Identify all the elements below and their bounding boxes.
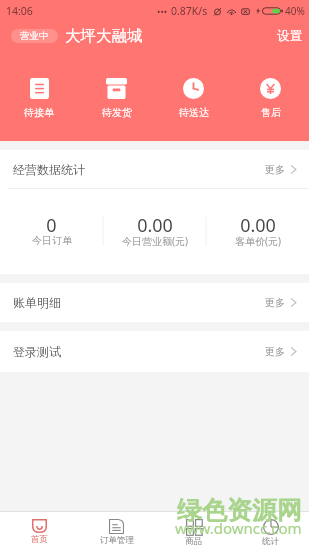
staticText: 更多: [265, 345, 285, 358]
button[interactable]: 统计: [232, 512, 309, 547]
staticText: 订单管理: [100, 535, 134, 546]
staticText: 售后: [261, 106, 281, 119]
staticText: 经营数据统计: [13, 162, 85, 177]
staticText: 统计: [262, 536, 279, 547]
staticText: 待送达: [179, 106, 209, 119]
staticText: 14:06: [6, 4, 33, 18]
button[interactable]: 售后: [232, 49, 309, 119]
staticText: •••: [157, 5, 168, 17]
staticText: 设置: [277, 28, 302, 44]
button[interactable]: 经营数据统计: [0, 150, 309, 188]
staticText: 今日营业额(元): [122, 234, 188, 248]
staticText: 账单明细: [13, 295, 61, 310]
staticText: 0.87K/s: [171, 4, 208, 18]
staticText: 待接单: [24, 106, 54, 119]
staticText: 营业中: [20, 30, 49, 42]
staticText: 0.00: [240, 213, 276, 238]
staticText: 客单价(元): [235, 234, 281, 248]
staticText: 绿色资源网: [177, 495, 302, 526]
button[interactable]: 待送达: [155, 49, 232, 119]
button[interactable]: 营业中: [11, 29, 58, 43]
button[interactable]: 设置: [271, 24, 309, 48]
staticText: 登录测试: [13, 344, 61, 359]
staticText: 更多: [265, 296, 285, 309]
staticText: 更多: [265, 163, 285, 176]
staticText: 今日订单: [32, 234, 72, 247]
button[interactable]: 订单管理: [78, 512, 155, 546]
button[interactable]: 商品: [155, 512, 232, 547]
staticText: 0.00: [137, 213, 173, 238]
staticText: 商品: [185, 536, 202, 547]
staticText: 待发货: [102, 106, 132, 119]
staticText: 40%: [285, 4, 305, 18]
button[interactable]: 账单明细: [0, 283, 309, 322]
button[interactable]: 待接单: [0, 49, 78, 119]
staticText: 首页: [31, 534, 48, 545]
staticText: 0: [46, 213, 57, 238]
button[interactable]: 首页: [0, 512, 78, 545]
staticText: www.downcc.com: [175, 518, 302, 538]
staticText: 大坪大融城: [65, 26, 143, 46]
button[interactable]: 登录测试: [0, 331, 309, 372]
button[interactable]: 待发货: [78, 49, 155, 119]
